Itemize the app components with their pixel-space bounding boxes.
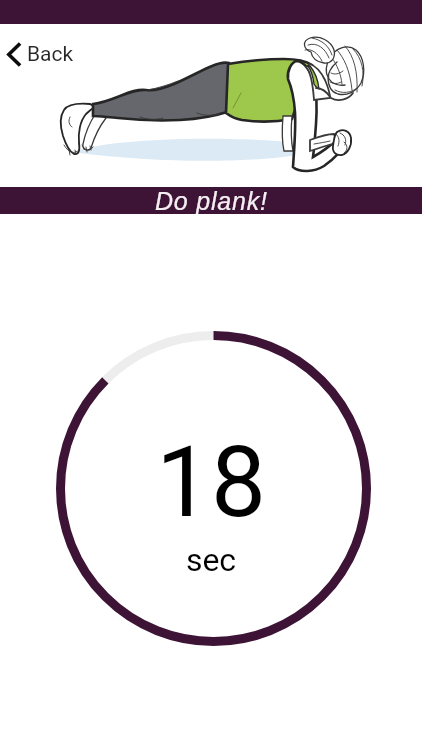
- staticText: sec: [0, 541, 422, 579]
- staticText: 18: [0, 425, 422, 540]
- staticText: Do plank!: [155, 187, 268, 214]
- staticText: Back: [27, 42, 74, 67]
- button[interactable]: Back: [0, 32, 92, 76]
- button[interactable]: [56, 331, 371, 646]
